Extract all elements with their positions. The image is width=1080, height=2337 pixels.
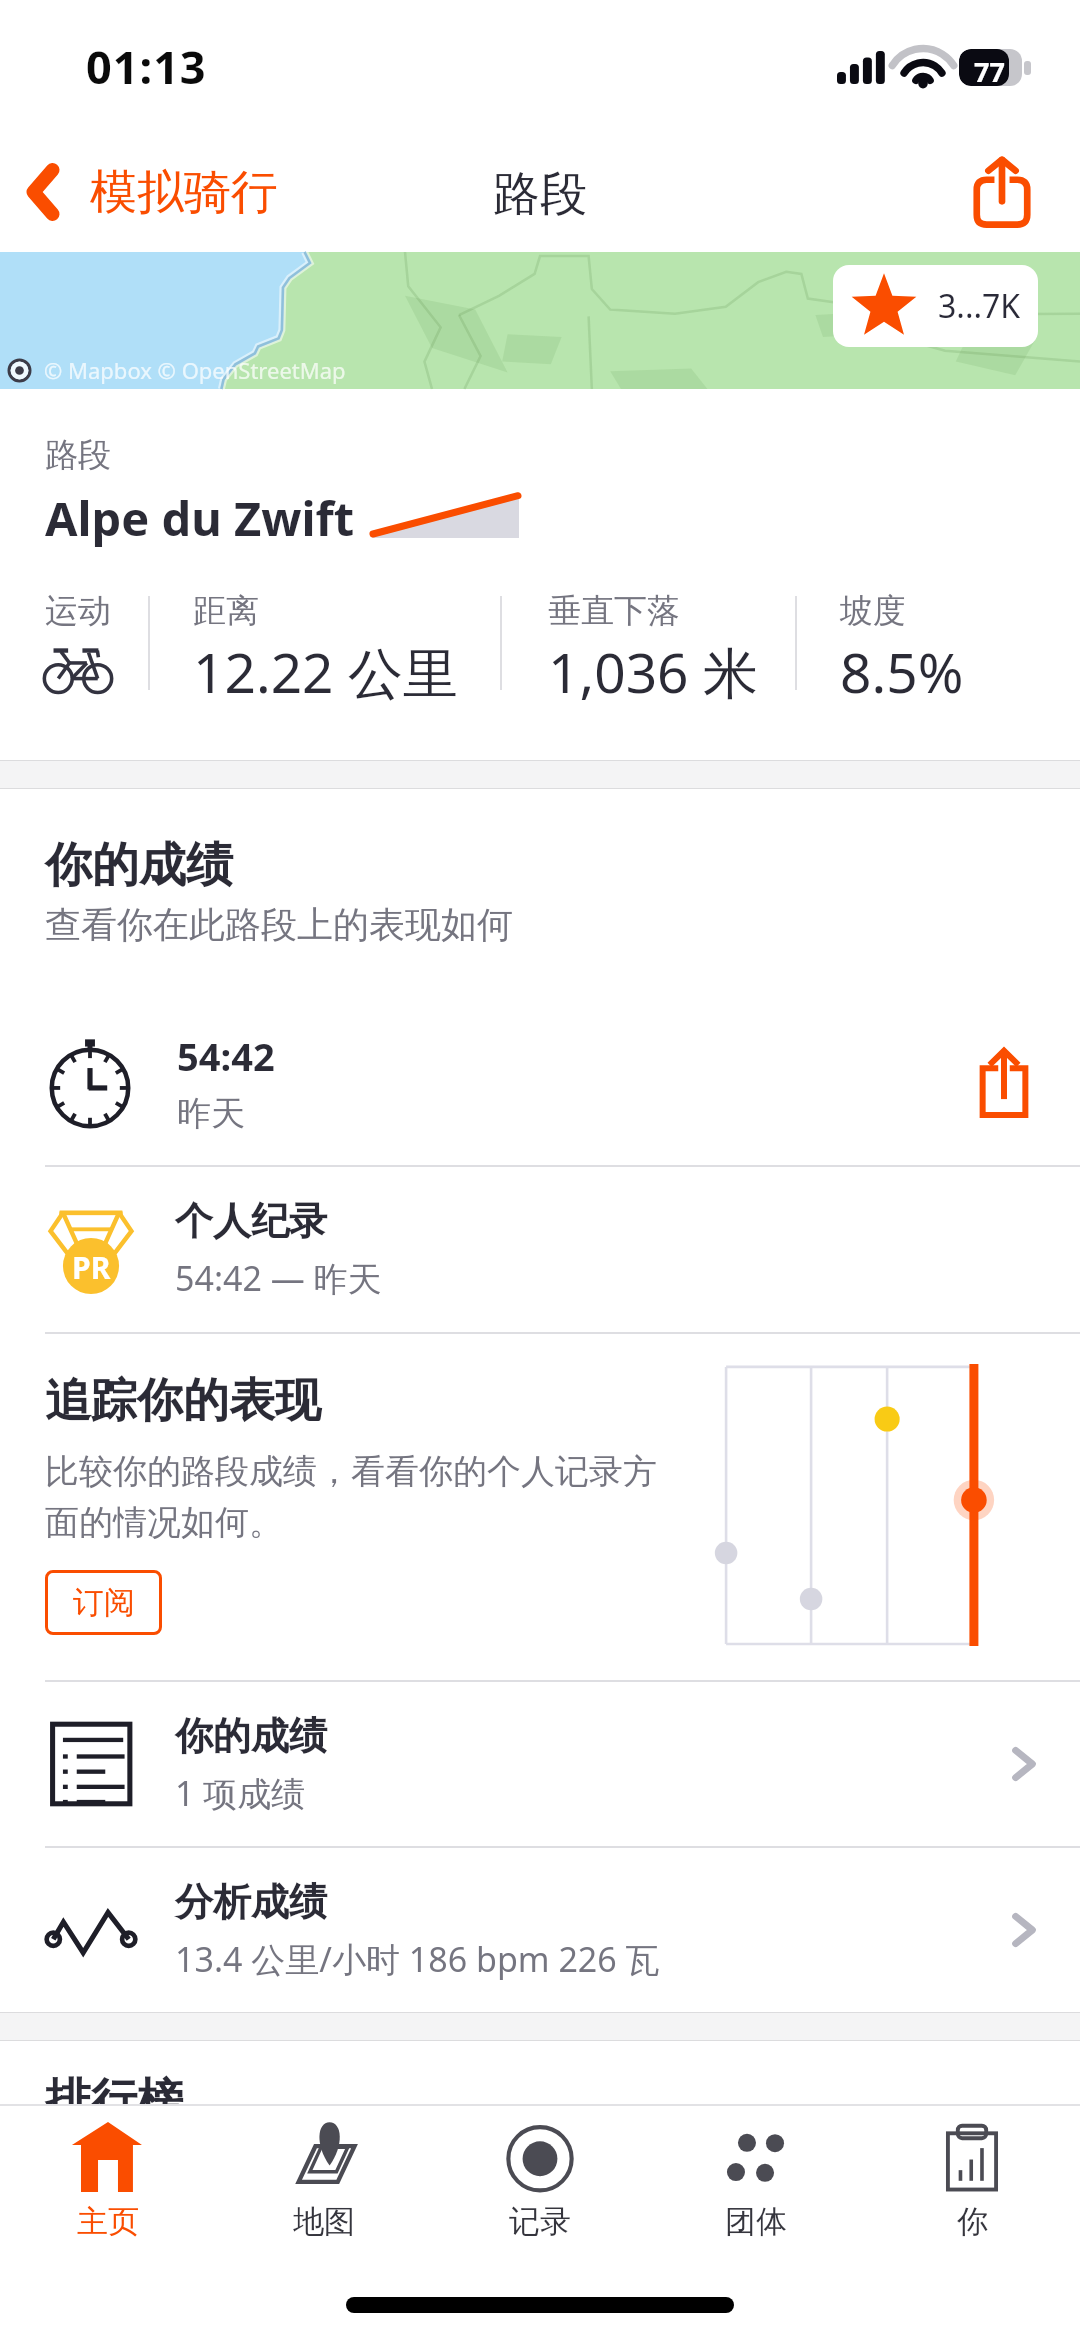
staticText: 77 [974, 53, 1005, 90]
button[interactable]: 3...7K [833, 265, 1038, 347]
staticText: 地图 [293, 2202, 355, 2241]
staticText: 路段 [493, 165, 587, 224]
staticText: 13.4 公里/小时 186 bpm 226 瓦 [175, 1936, 660, 1982]
button[interactable]: 地图 [216, 2106, 432, 2241]
staticText: 3...7K [938, 284, 1021, 328]
staticText: 记录 [509, 2202, 571, 2241]
button[interactable]: 订阅 [45, 1570, 162, 1635]
staticText: 分析成绩 [175, 1878, 327, 1926]
button[interactable]: 54:42 [0, 1000, 1080, 1165]
staticText: 垂直下落 [548, 590, 680, 632]
staticText: 追踪你的表现 [45, 1372, 321, 1430]
staticText: 团体 [725, 2202, 787, 2241]
staticText: 54:42 — 昨天 [175, 1255, 382, 1301]
staticText: 订阅 [73, 1583, 135, 1622]
staticText: 路段 [45, 434, 111, 476]
staticText: 昨天 [177, 1092, 245, 1135]
button[interactable]: 记录 [432, 2106, 648, 2241]
button[interactable]: 分析成绩 [0, 1847, 1080, 2012]
staticText: 比较你的路段成绩，看看你的个人记录方面的情况如何。 [45, 1450, 657, 1544]
staticText: 54:42 [177, 1030, 275, 1082]
staticText: 个人纪录 [175, 1197, 327, 1245]
staticText: 模拟骑行 [90, 163, 278, 222]
staticText: 8.5% [840, 634, 964, 709]
staticText: 1,036 米 [548, 634, 758, 709]
staticText: 你的成绩 [175, 1712, 327, 1760]
staticText: 运动 [45, 590, 111, 632]
staticText: 坡度 [840, 590, 906, 632]
staticText: PR [72, 1247, 111, 1288]
staticText: 01:13 [86, 36, 207, 97]
staticText: 主页 [77, 2202, 139, 2241]
button[interactable]: PR [0, 1166, 1080, 1332]
staticText: 12.22 公里 [193, 634, 458, 709]
button[interactable]: 主页 [0, 2106, 216, 2241]
button[interactable]: 团体 [648, 2106, 864, 2241]
staticText: 查看你在此路段上的表现如何 [45, 902, 513, 947]
button[interactable]: 你 [864, 2106, 1080, 2241]
button[interactable]: 模拟骑行 [26, 132, 480, 252]
button[interactable]: Share result [962, 1041, 1046, 1125]
staticText: 你 [957, 2202, 988, 2241]
staticText: 距离 [193, 590, 259, 632]
button[interactable]: Share [957, 147, 1047, 237]
staticText: 你的成绩 [45, 836, 233, 895]
staticText: 排行榜 [45, 2072, 183, 2130]
button[interactable]: 你的成绩 [0, 1681, 1080, 1846]
staticText: © Mapbox © OpenStreetMap [44, 355, 346, 385]
staticText: Alpe du Zwift [45, 486, 355, 550]
staticText: 1 项成绩 [175, 1770, 306, 1816]
